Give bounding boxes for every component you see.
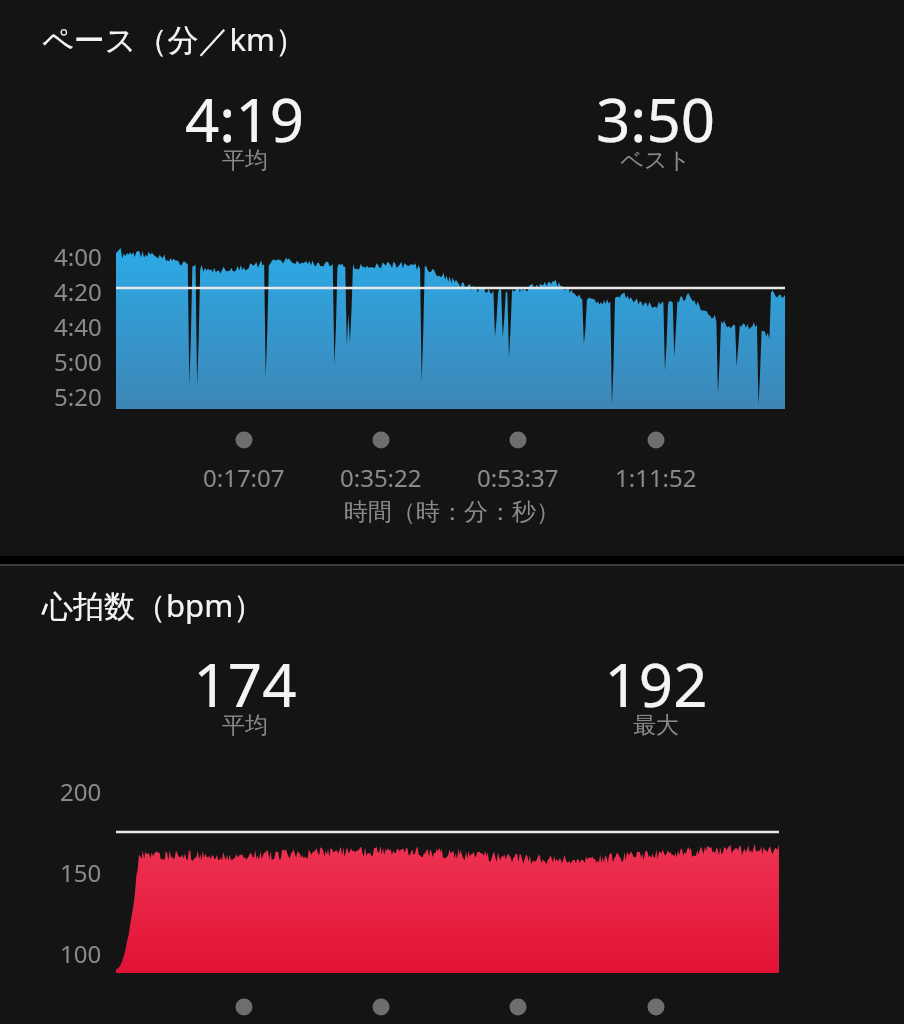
button[interactable]: Pace and heart rate workout charts xyxy=(0,0,904,1024)
